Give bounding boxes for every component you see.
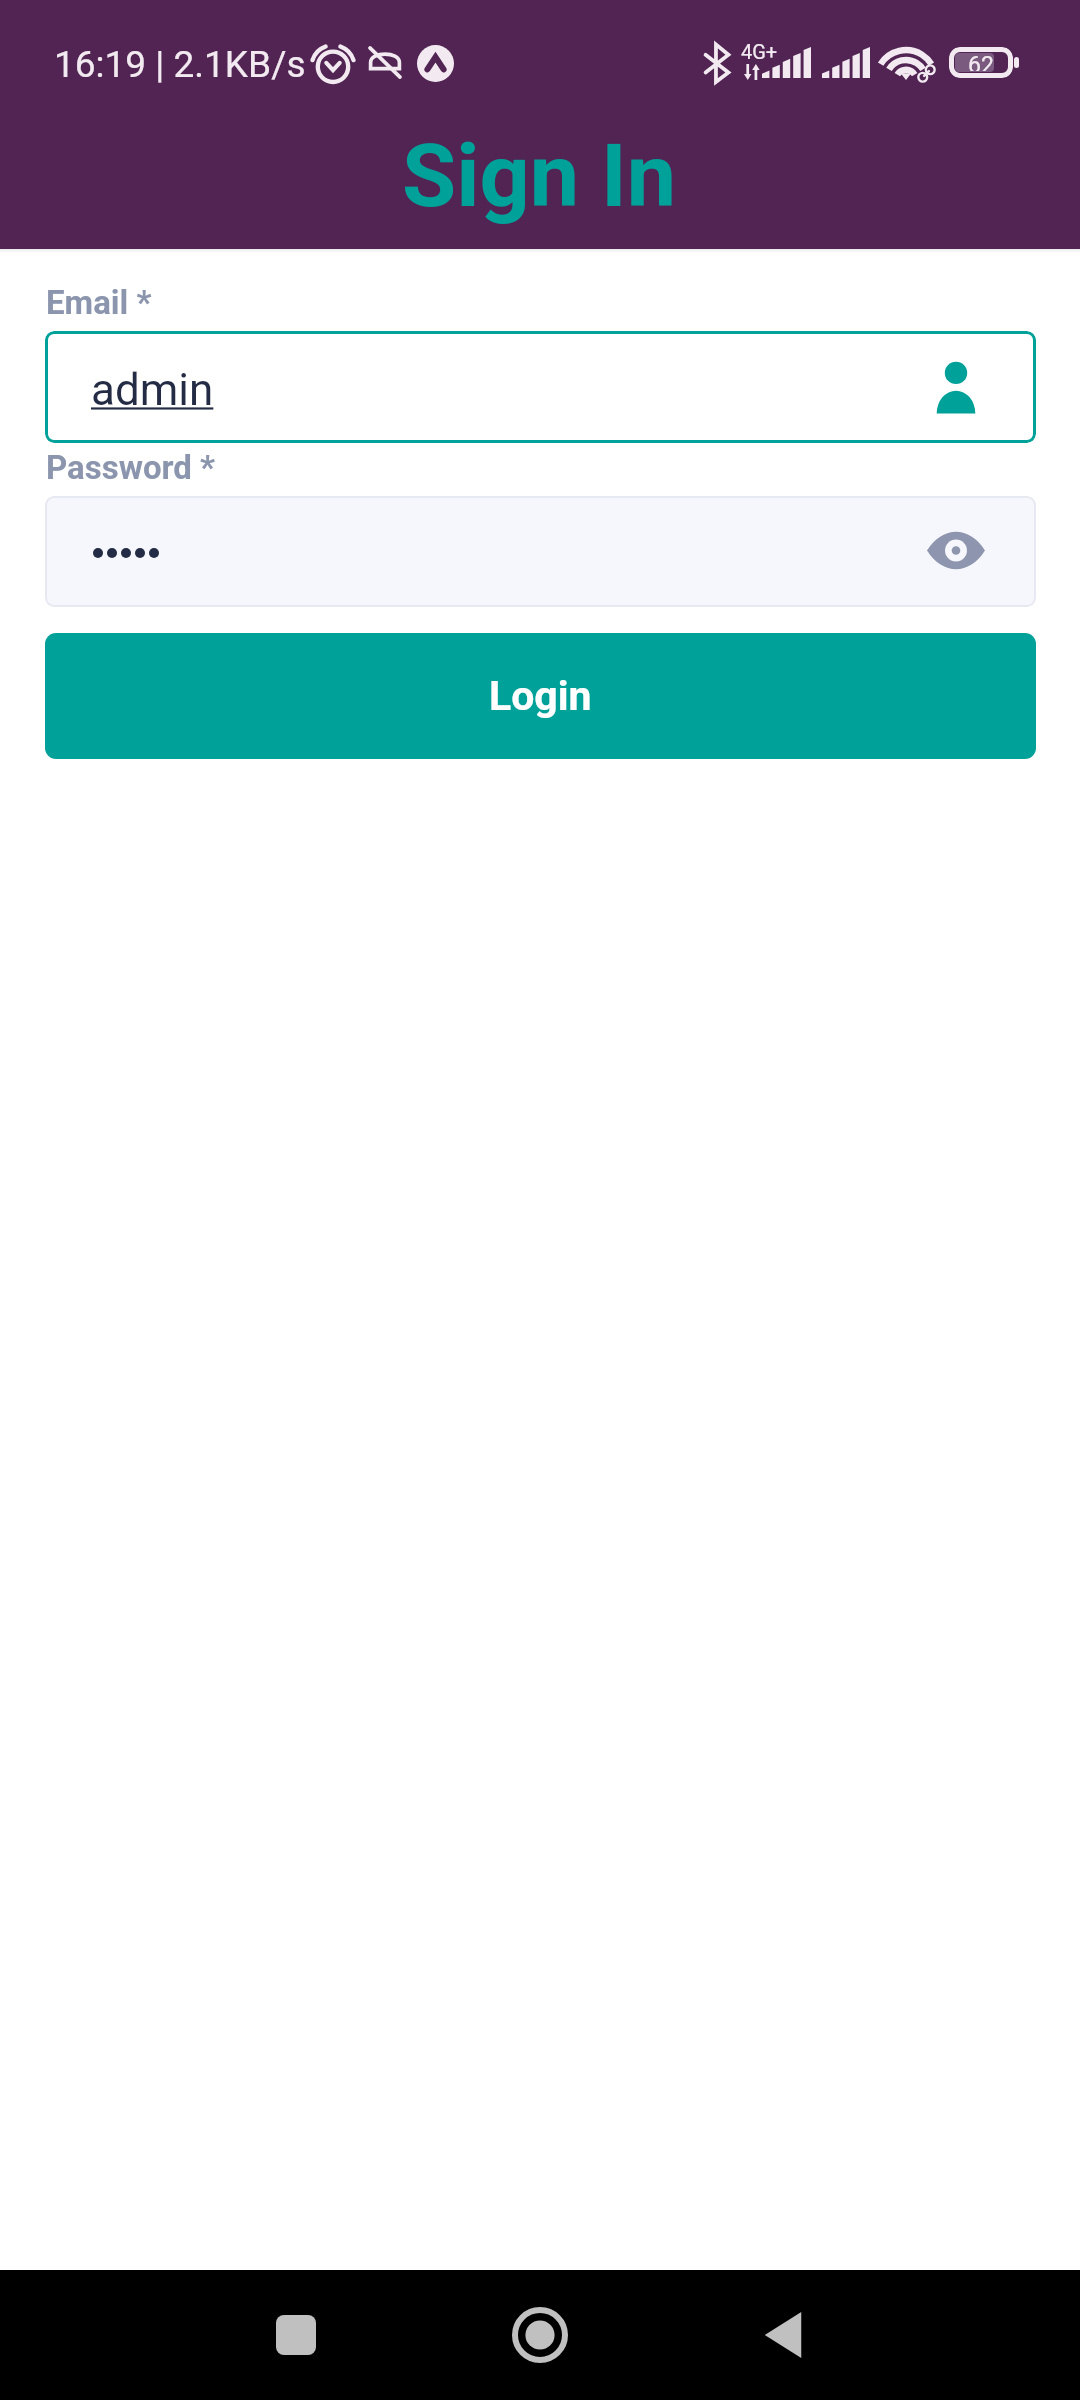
staticText: 4G+ — [741, 40, 778, 63]
staticText: 16:19 | 2.1KB/s — [54, 43, 306, 86]
staticText: 62 — [968, 52, 994, 71]
other: Account — [936, 361, 976, 415]
button[interactable]: Login — [45, 633, 1036, 759]
button[interactable]: Show password — [919, 518, 993, 583]
button[interactable]: admin — [45, 331, 1036, 443]
button[interactable]: Show password — [45, 496, 1036, 607]
button[interactable]: Back — [743, 2295, 823, 2375]
button[interactable]: Recents — [256, 2295, 336, 2375]
staticText: Password * — [46, 448, 216, 487]
staticText: Sign In — [402, 124, 677, 227]
staticText: Email * — [46, 283, 152, 322]
staticText: Login — [489, 672, 592, 720]
button[interactable]: Home — [500, 2295, 580, 2375]
staticText: admin — [91, 364, 214, 416]
